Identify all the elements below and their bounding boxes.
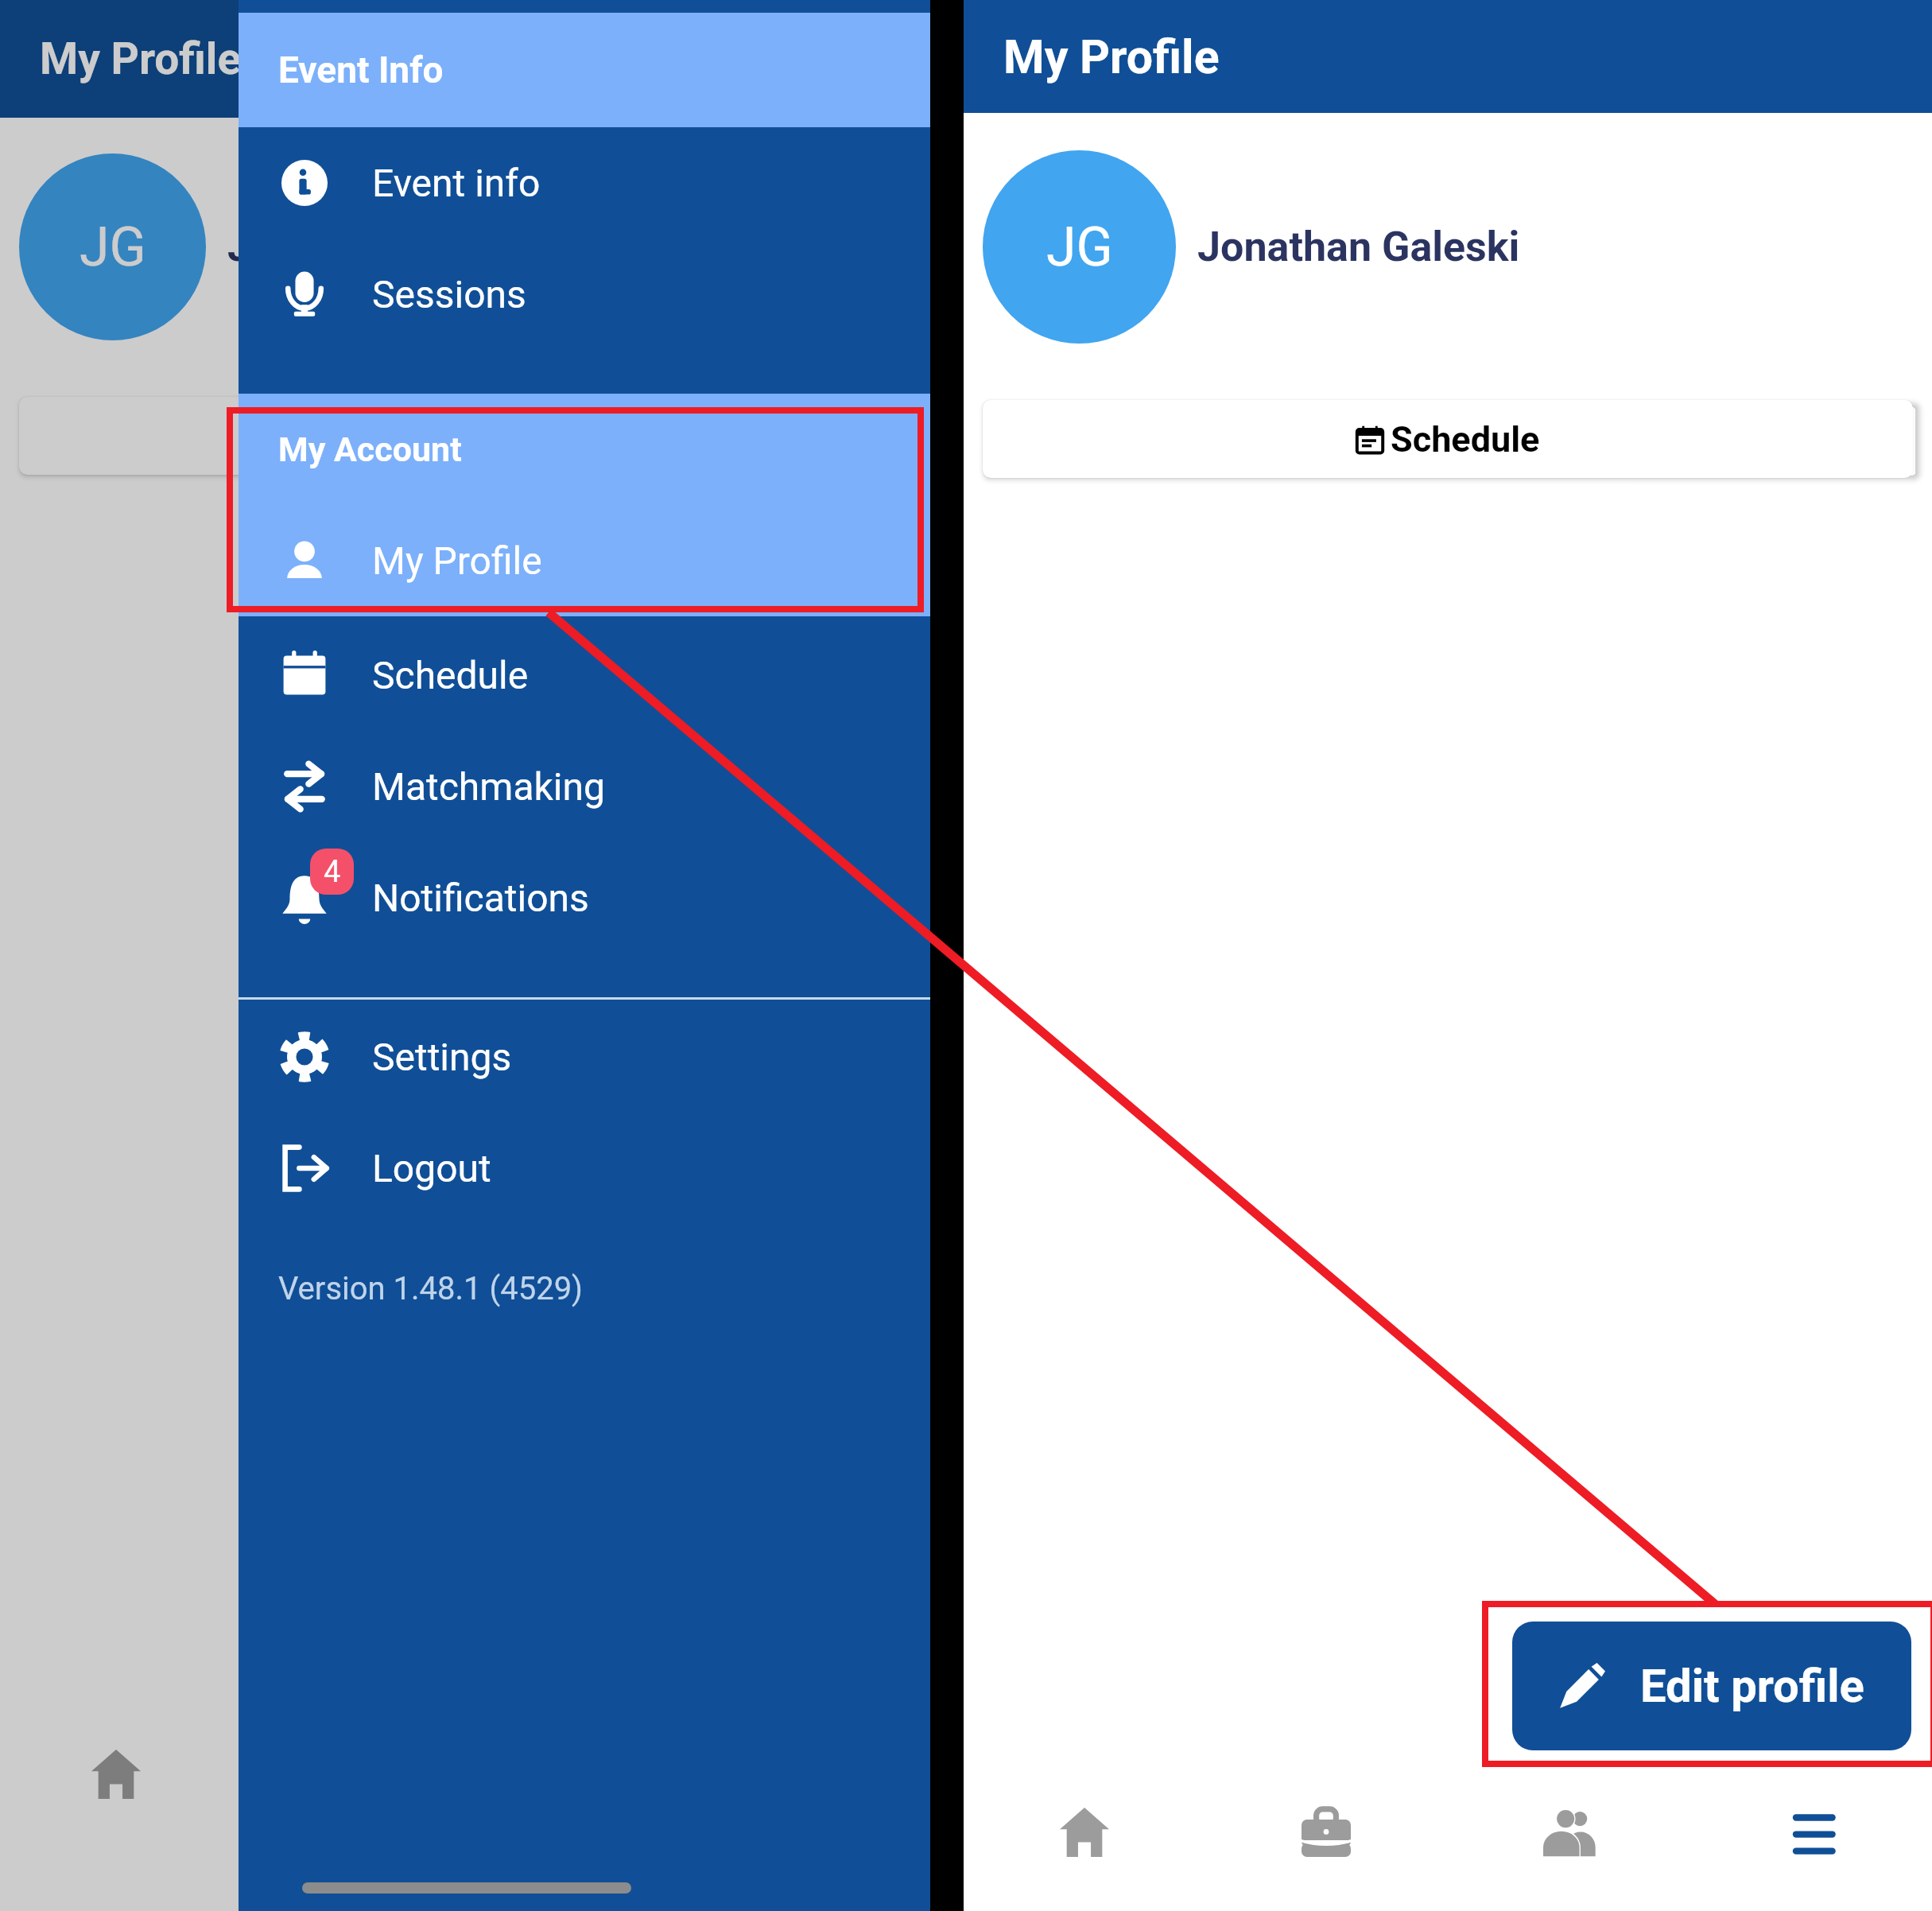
staticText: My Account [278,429,462,469]
staticText: Settings [372,1035,512,1079]
staticText: Event Info [278,49,444,91]
button[interactable]: Schedule [19,397,911,475]
button[interactable]: Logout [239,1113,930,1224]
staticText: Matchmaking [372,764,605,809]
button[interactable]: Event info [239,127,930,239]
staticText: Version 1.48.1 (4529) [278,1270,584,1307]
staticText: Jonathan Galeski [227,223,550,271]
button[interactable]: Jobs [232,1715,464,1853]
button[interactable]: Home [964,1773,1205,1911]
staticText: Jonathan Galeski [1197,223,1520,271]
button[interactable]: Jobs [1205,1773,1447,1911]
button[interactable]: Schedule [983,400,1913,478]
button[interactable]: Home [0,1715,232,1853]
button[interactable]: Matchmaking [239,731,930,842]
staticText: Edit profile [1640,1659,1864,1713]
staticText: Schedule [372,653,529,697]
staticText: My Profile [40,33,242,84]
staticText: My Profile [1003,29,1220,84]
button[interactable]: People [1447,1773,1690,1911]
button[interactable]: Sessions [239,239,930,350]
staticText: My Profile [372,538,542,583]
button[interactable]: My Profile [239,505,930,616]
button[interactable]: 4 [239,842,930,954]
staticText: Schedule [1391,418,1540,460]
button[interactable]: Edit profile [1512,1622,1911,1750]
button[interactable]: Schedule [239,620,930,731]
staticText: Logout [372,1146,491,1190]
staticText: 4 [324,854,341,890]
staticText: Event info [372,161,541,205]
staticText: Sessions [372,272,526,317]
staticText: JG [80,216,146,279]
staticText: Notifications [372,876,589,920]
button[interactable]: Settings [239,1001,930,1113]
staticText: JG [1046,216,1113,279]
staticText: Schedule [408,415,557,457]
button[interactable]: Menu [1690,1773,1932,1911]
